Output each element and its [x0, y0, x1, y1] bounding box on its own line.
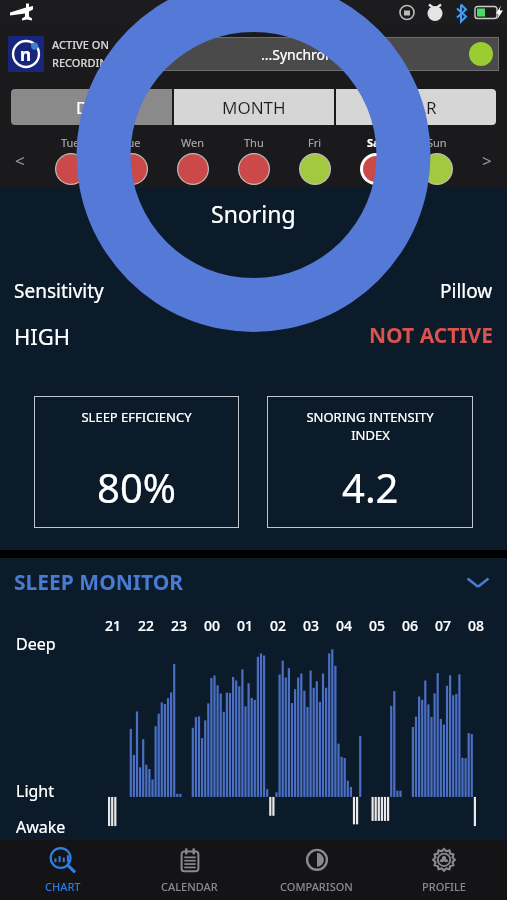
staticText: Pillow [440, 278, 493, 304]
staticText: 08 [468, 616, 485, 635]
staticText: 22 [138, 616, 155, 635]
button[interactable]: CHART [0, 840, 126, 900]
staticText: Light [16, 780, 55, 802]
button[interactable]: SLEEP MONITOR [14, 558, 493, 606]
staticText: RECORDING [52, 55, 116, 70]
staticText: Deep [16, 633, 56, 655]
staticText: Tue [61, 135, 80, 150]
staticText: ACTIVE ON [52, 37, 109, 52]
staticText: Tue [122, 135, 141, 150]
staticText: 05 [369, 616, 386, 635]
staticText: Fri [308, 135, 322, 150]
button[interactable]: Thu [223, 132, 284, 188]
button[interactable]: CALENDAR [126, 840, 253, 900]
button[interactable]: SLEEP EFFICIENCY [34, 396, 239, 528]
staticText: 02 [270, 616, 287, 635]
staticText: 01 [237, 616, 254, 635]
staticText: YEAR [396, 96, 437, 119]
staticText: SLEEP EFFICIENCY [81, 408, 192, 426]
staticText: 06 [402, 616, 419, 635]
staticText: 23 [171, 616, 188, 635]
staticText: CALENDAR [161, 879, 218, 894]
button[interactable]: Tue [101, 132, 162, 188]
staticText: NOT ACTIVE [369, 321, 493, 350]
staticText: Snoring [211, 198, 296, 229]
button[interactable]: ...Synchronizing [126, 37, 499, 71]
button[interactable]: Sat [345, 132, 406, 188]
staticText: COMPARISON [280, 879, 353, 894]
button[interactable]: COMPARISON [253, 840, 380, 900]
button[interactable]: Next [467, 132, 507, 188]
staticText: Thu [244, 135, 264, 150]
staticText: 04 [336, 616, 353, 635]
staticText: Sat [367, 135, 385, 150]
staticText: 4.2 [342, 460, 399, 514]
button[interactable]: DAY [11, 89, 172, 125]
button[interactable]: SNORING INTENSITY [267, 396, 473, 528]
staticText: Wen [181, 135, 205, 150]
staticText: Sun [427, 135, 447, 150]
staticText: 07 [435, 616, 452, 635]
button[interactable]: Wen [162, 132, 223, 188]
staticText: HIGH [14, 321, 71, 351]
staticText: 80% [97, 460, 176, 514]
staticText: SNORING INTENSITY [306, 408, 434, 426]
staticText: ...Synchronizing [261, 45, 365, 64]
staticText: < [15, 149, 25, 172]
button[interactable]: YEAR [336, 89, 496, 125]
staticText: DAY [76, 96, 108, 119]
staticText: 21 [105, 616, 122, 635]
staticText: Awake [16, 816, 66, 838]
staticText: n [20, 43, 32, 66]
staticText: CHART [45, 879, 81, 894]
other: Collapse [463, 567, 493, 597]
staticText: MONTH [222, 96, 286, 119]
staticText: INDEX [351, 426, 390, 444]
staticText: SLEEP MONITOR [14, 568, 184, 597]
staticText: Sensitivity [14, 278, 104, 304]
button[interactable]: Tue [40, 132, 101, 188]
staticText: 03 [303, 616, 320, 635]
staticText: > [482, 149, 492, 172]
button[interactable]: Fri [284, 132, 345, 188]
staticText: PROFILE [422, 879, 466, 894]
staticText: 00 [204, 616, 221, 635]
button[interactable]: App logo [8, 36, 44, 72]
button[interactable]: Sun [406, 132, 467, 188]
button[interactable]: MONTH [174, 89, 334, 125]
button[interactable]: Previous [0, 132, 40, 188]
button[interactable]: PROFILE [380, 840, 507, 900]
